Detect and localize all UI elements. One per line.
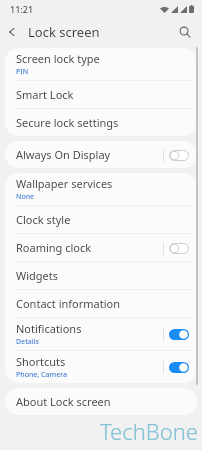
staticText: Shortcuts — [16, 354, 66, 369]
staticText: Smart Lock — [16, 87, 74, 102]
staticText: None — [16, 192, 35, 202]
button[interactable]: Always On Display off — [163, 145, 189, 165]
staticText: 11:21 — [10, 3, 34, 15]
staticText: Widgets — [16, 268, 59, 283]
staticText: Always On Display — [16, 147, 111, 162]
staticText: Contact information — [16, 296, 120, 311]
staticText: Clock style — [16, 212, 71, 227]
button[interactable]: Search — [174, 21, 196, 43]
staticText: Wallpaper services — [16, 176, 113, 191]
staticText: PIN — [16, 67, 29, 77]
button[interactable]: Screen lock type — [5, 48, 197, 80]
staticText: TechBone — [100, 416, 198, 446]
button[interactable]: Always On Display — [5, 141, 197, 168]
button[interactable]: About Lock screen — [5, 388, 197, 415]
button[interactable]: Notifications — [5, 318, 197, 350]
button[interactable]: Widgets — [5, 262, 197, 289]
button[interactable]: Smart Lock — [5, 81, 197, 108]
staticText: About Lock screen — [16, 394, 111, 409]
staticText: Screen lock type — [16, 51, 100, 66]
button[interactable]: Roaming clock — [5, 234, 197, 261]
staticText: Secure lock settings — [16, 115, 119, 130]
button[interactable]: Shortcuts on — [163, 357, 189, 377]
button[interactable]: Roaming clock off — [163, 238, 189, 258]
button[interactable]: Notifications on — [163, 324, 189, 344]
staticText: Lock screen — [28, 23, 100, 41]
button[interactable]: Contact information — [5, 290, 197, 317]
staticText: Roaming clock — [16, 240, 92, 255]
staticText: Notifications — [16, 321, 82, 336]
button[interactable]: Clock style — [5, 206, 197, 233]
staticText: Details — [16, 337, 40, 347]
button[interactable]: Shortcuts — [5, 351, 197, 383]
button[interactable]: Secure lock settings — [5, 109, 197, 136]
button[interactable]: Back — [0, 20, 24, 44]
staticText: Phone, Camera — [16, 370, 67, 380]
button[interactable]: Wallpaper services — [5, 173, 197, 205]
